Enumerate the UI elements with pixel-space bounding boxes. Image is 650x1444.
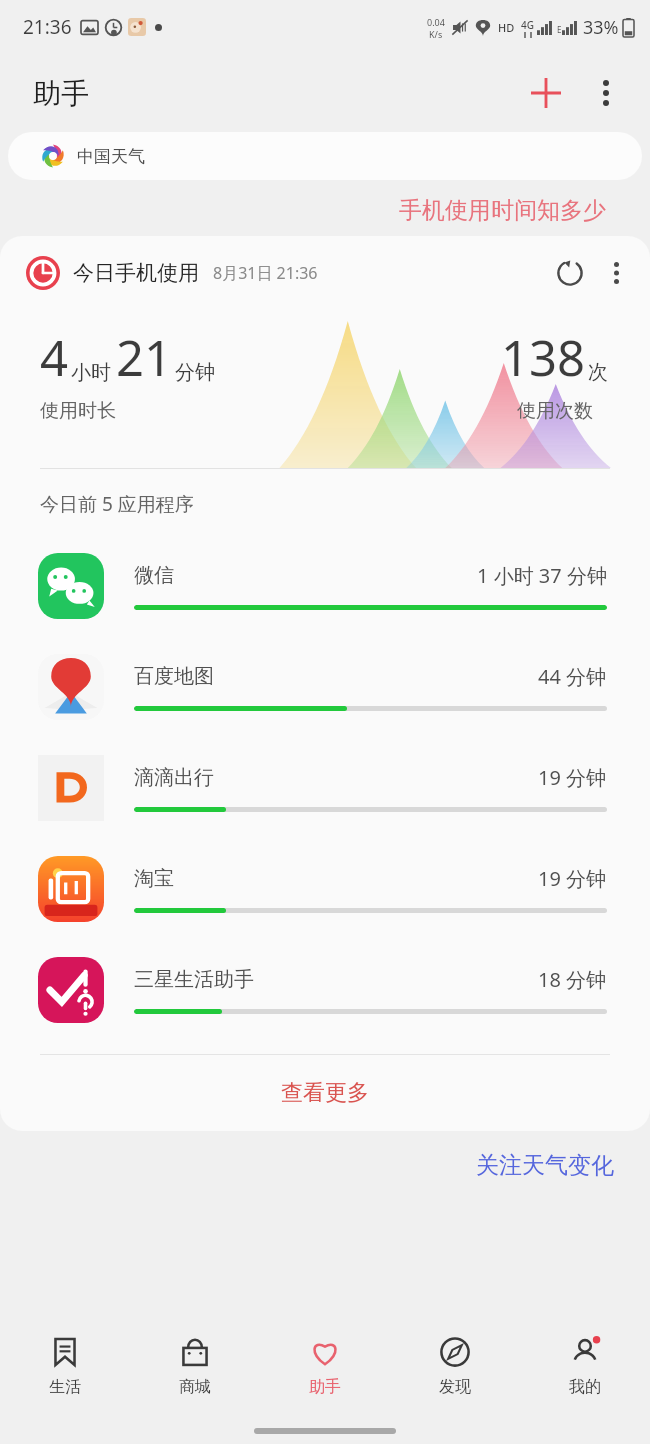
staticText: 生活	[49, 1377, 81, 1397]
staticText: 使用次数	[517, 399, 593, 423]
staticText: E	[557, 24, 562, 35]
staticText: 19 分钟	[538, 865, 607, 892]
staticText: 21:36	[23, 14, 72, 40]
button[interactable]: 今日手机使用	[0, 236, 650, 1131]
staticText: 8月31日 21:36	[213, 262, 318, 284]
button[interactable]: 关注天气变化	[476, 1151, 650, 1180]
button[interactable]: 助手	[260, 1314, 390, 1418]
staticText: 19 分钟	[538, 764, 607, 791]
button[interactable]: 我的	[520, 1314, 650, 1418]
button[interactable]: 百度地图	[0, 636, 650, 737]
button[interactable]: 商城	[130, 1314, 260, 1418]
staticText: 中国天气	[77, 146, 145, 167]
staticText: 4G	[521, 18, 534, 32]
staticText: 次	[588, 360, 608, 385]
staticText: 138	[501, 324, 586, 391]
button[interactable]: Add	[518, 65, 574, 121]
button[interactable]: 中国天气	[8, 132, 642, 180]
staticText: 商城	[179, 1377, 211, 1397]
button[interactable]: Card options	[594, 251, 638, 295]
staticText: K/s	[429, 28, 443, 40]
staticText: 21	[116, 324, 173, 391]
staticText: 手机使用时间知多少	[0, 196, 606, 225]
button[interactable]: 微信	[0, 535, 650, 636]
staticText: 1 小时 37 分钟	[477, 562, 607, 589]
staticText: 0.04	[427, 16, 445, 28]
button[interactable]: 发现	[390, 1314, 520, 1418]
button[interactable]: 三星生活助手	[0, 939, 650, 1040]
staticText: 今日手机使用	[73, 260, 199, 286]
button[interactable]: More options	[580, 67, 632, 119]
staticText: 我的	[569, 1377, 601, 1397]
staticText: 发现	[439, 1377, 471, 1397]
staticText: 滴滴出行	[134, 765, 214, 790]
button[interactable]: 查看更多	[0, 1055, 650, 1131]
staticText: 百度地图	[134, 664, 214, 689]
staticText: 查看更多	[281, 1079, 369, 1107]
staticText: 微信	[134, 563, 174, 588]
staticText: 4	[40, 324, 69, 391]
staticText: 18 分钟	[538, 966, 607, 993]
staticText: 淘宝	[134, 866, 174, 891]
staticText: 小时	[71, 360, 111, 385]
staticText: 33%	[583, 15, 619, 40]
staticText: 助手	[33, 76, 89, 111]
staticText: 使用时长	[40, 399, 116, 423]
button[interactable]: 淘宝	[0, 838, 650, 939]
button[interactable]: Refresh	[546, 249, 594, 297]
button[interactable]: 生活	[0, 1314, 130, 1418]
staticText: 助手	[309, 1377, 341, 1397]
staticText: 今日前 5 应用程序	[40, 491, 194, 517]
staticText: 分钟	[175, 360, 215, 385]
staticText: 三星生活助手	[134, 967, 254, 992]
staticText: 44 分钟	[538, 663, 607, 690]
button[interactable]: 滴滴出行	[0, 737, 650, 838]
staticText: HD	[498, 20, 515, 35]
